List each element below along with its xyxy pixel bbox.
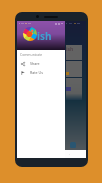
button[interactable]: Communicate bbox=[20, 52, 43, 57]
staticText: ish bbox=[37, 29, 52, 43]
button[interactable]: Share bbox=[17, 59, 65, 68]
button[interactable]: Rate Us bbox=[17, 68, 65, 77]
button[interactable]: ish bbox=[66, 45, 82, 60]
staticText: Share bbox=[30, 61, 40, 66]
staticText: ish bbox=[66, 46, 74, 53]
button[interactable] bbox=[66, 78, 82, 100]
button[interactable] bbox=[66, 61, 82, 77]
staticText: Rate Us bbox=[30, 70, 43, 75]
button[interactable]: Add bbox=[70, 142, 76, 148]
